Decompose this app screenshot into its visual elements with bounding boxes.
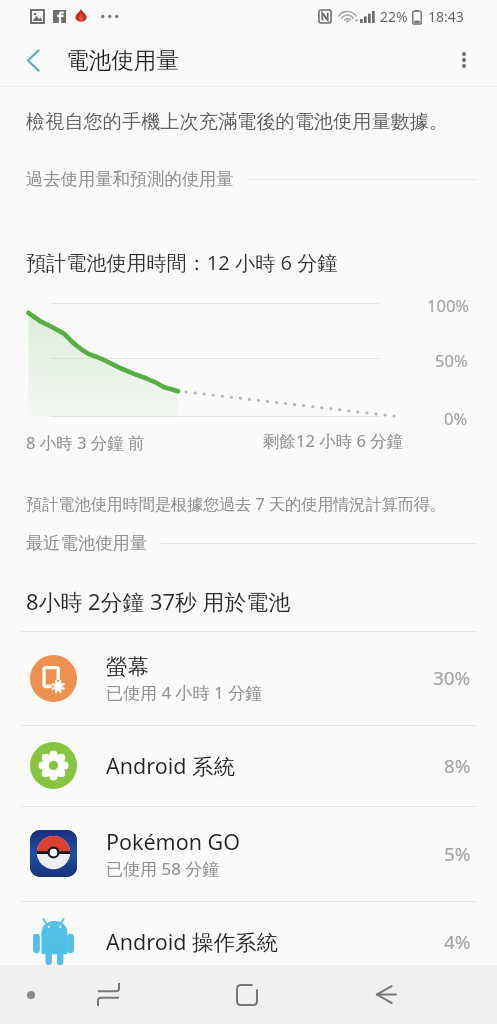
button[interactable]: Android 系統 <box>0 725 497 806</box>
staticText: 8% <box>444 753 471 779</box>
button[interactable]: Back <box>356 965 416 1024</box>
staticText: 剩餘12 小時 6 分鐘 <box>263 429 404 452</box>
staticText: 預計電池使用時間是根據您過去 7 天的使用情況計算而得。 <box>26 493 446 515</box>
staticText: 8小時 2分鐘 37秒 用於電池 <box>26 587 291 617</box>
staticText: 18:43 <box>428 7 464 26</box>
staticText: Android 操作系統 <box>106 927 279 956</box>
staticText: 0% <box>444 407 468 429</box>
button[interactable]: Android 操作系統 <box>0 901 497 982</box>
button[interactable]: Home <box>217 965 277 1024</box>
staticText: 已使用 58 分鐘 <box>106 857 220 880</box>
button[interactable]: Menu <box>8 965 53 1024</box>
button[interactable]: 螢幕 <box>0 631 497 725</box>
staticText: 最近電池使用量 <box>26 532 148 554</box>
staticText: Pokémon GO <box>106 827 241 856</box>
staticText: 電池使用量 <box>66 46 179 74</box>
button[interactable]: Back <box>10 37 56 83</box>
staticText: 5% <box>444 841 471 867</box>
staticText: 檢視自您的手機上次充滿電後的電池使用量數據。 <box>26 110 449 134</box>
staticText: 22% <box>380 7 408 26</box>
button[interactable]: More options <box>441 37 487 83</box>
button[interactable]: Recent apps <box>78 965 138 1024</box>
staticText: 30% <box>433 665 471 691</box>
staticText: 8 小時 3 分鐘 前 <box>26 431 145 454</box>
staticText: 過去使用量和預測的使用量 <box>26 168 234 190</box>
staticText: 螢幕 <box>106 653 149 680</box>
staticText: 已使用 4 小時 1 分鐘 <box>106 681 263 704</box>
staticText: 預計電池使用時間：12 小時 6 分鐘 <box>26 249 338 276</box>
staticText: 100% <box>427 294 470 316</box>
button[interactable]: Pokémon GO <box>0 806 497 901</box>
staticText: Android 系統 <box>106 751 236 780</box>
staticText: 50% <box>435 349 468 371</box>
staticText: 4% <box>444 929 471 955</box>
